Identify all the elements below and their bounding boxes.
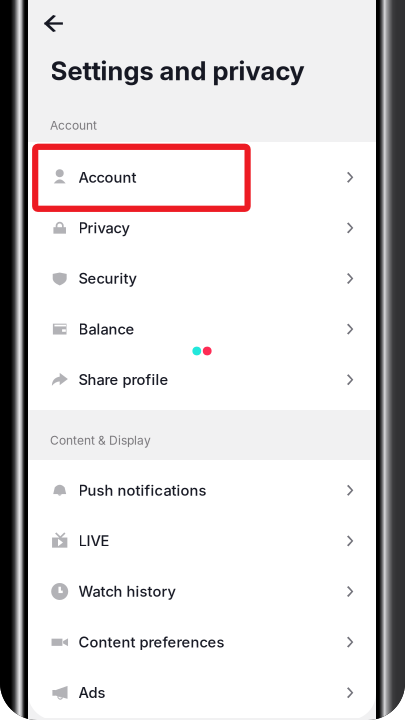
- button[interactable]: Share profile: [28, 354, 376, 405]
- staticText: LIVE: [78, 532, 109, 550]
- staticText: Content preferences: [78, 633, 224, 651]
- staticText: Security: [78, 270, 136, 287]
- button[interactable]: Security: [28, 253, 376, 304]
- staticText: Settings and privacy: [50, 55, 304, 86]
- button[interactable]: Content preferences: [28, 617, 376, 667]
- staticText: Balance: [78, 320, 134, 338]
- button[interactable]: Push notifications: [28, 465, 376, 516]
- button[interactable]: Ads: [28, 667, 376, 718]
- staticText: Share profile: [78, 371, 168, 388]
- staticText: Push notifications: [78, 481, 206, 499]
- staticText: Privacy: [78, 219, 129, 237]
- button[interactable]: Watch history: [28, 566, 376, 617]
- button[interactable]: Account: [28, 152, 376, 203]
- staticText: Ads: [78, 684, 105, 701]
- staticText: Watch history: [78, 583, 175, 600]
- staticText: Content & Display: [50, 433, 151, 447]
- staticText: Account: [78, 168, 136, 186]
- button[interactable]: Back: [28, 0, 75, 46]
- button[interactable]: Balance: [28, 304, 376, 354]
- staticText: Account: [50, 118, 97, 132]
- button[interactable]: Privacy: [28, 203, 376, 253]
- button[interactable]: LIVE: [28, 516, 376, 566]
